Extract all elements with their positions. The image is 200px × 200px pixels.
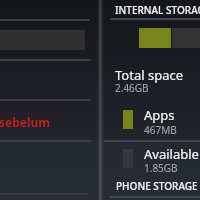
staticText: Apps [144, 106, 175, 124]
staticText: 467MB [144, 123, 177, 137]
button[interactable] [104, 104, 200, 140]
staticText: PHONE STORAGE [116, 179, 198, 193]
staticText: peringatan [0, 104, 66, 120]
staticText: 1.85GB [144, 161, 178, 175]
staticText: Available [144, 145, 199, 163]
staticText: INTERNAL STORAGE [115, 3, 200, 17]
staticText: sebelum [0, 114, 51, 130]
button[interactable] [104, 143, 200, 179]
staticText: Total space [115, 66, 183, 84]
staticText: 2.46GB [115, 81, 149, 95]
